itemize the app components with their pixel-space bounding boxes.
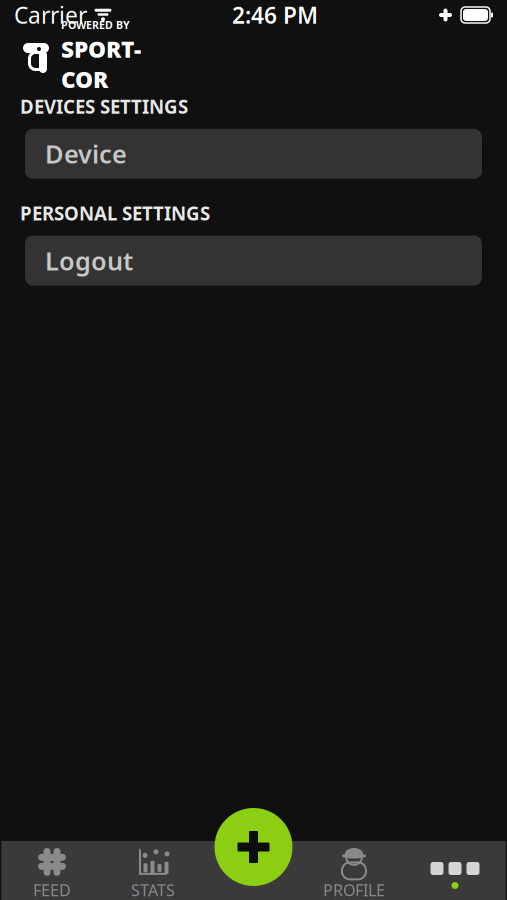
button[interactable]: PROFILE — [303, 841, 404, 900]
button[interactable]: Add — [214, 808, 292, 886]
staticText: POWERED BY — [61, 18, 130, 32]
staticText: PERSONAL SETTINGS — [20, 201, 210, 226]
button[interactable]: Logout — [25, 236, 482, 286]
button[interactable]: More — [404, 841, 505, 900]
staticText: STATS — [131, 879, 175, 900]
button[interactable]: FEED — [1, 841, 102, 900]
staticText: Logout — [45, 244, 133, 277]
staticText: Carrier — [14, 0, 87, 30]
button[interactable]: STATS — [102, 841, 203, 900]
button[interactable]: Device — [25, 129, 482, 179]
staticText: 2:46 PM — [232, 0, 318, 30]
staticText: DEVICES SETTINGS — [20, 94, 188, 119]
staticText: Device — [45, 137, 127, 171]
staticText: FEED — [33, 879, 71, 900]
staticText: PROFILE — [323, 879, 385, 900]
staticText: SPORTCOR — [61, 34, 141, 94]
